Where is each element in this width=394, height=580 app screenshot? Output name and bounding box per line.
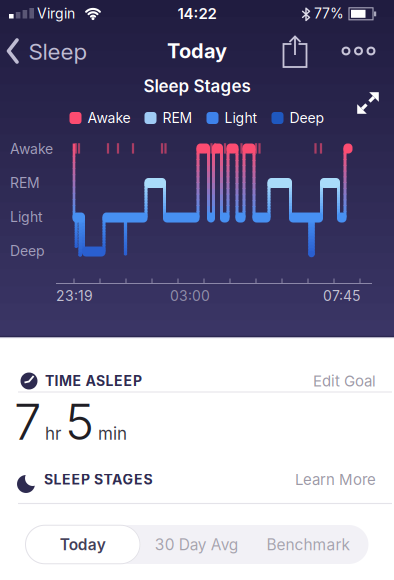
staticText: Sleep Stages bbox=[143, 76, 250, 96]
staticText: Today bbox=[167, 39, 227, 63]
staticText: Deep bbox=[10, 242, 45, 259]
button[interactable]: Benchmark bbox=[251, 525, 366, 564]
staticText: Edit Goal bbox=[313, 372, 376, 390]
staticText: Learn More bbox=[295, 470, 376, 488]
staticText: Sleep bbox=[28, 38, 87, 65]
button[interactable]: More bbox=[336, 31, 381, 71]
staticText: 5 bbox=[65, 392, 94, 452]
staticText: 30 Day Avg bbox=[155, 535, 239, 554]
staticText: Light bbox=[224, 109, 257, 126]
staticText: 07:45 bbox=[323, 287, 361, 304]
staticText: Deep bbox=[289, 109, 324, 126]
staticText: 7 bbox=[14, 392, 41, 452]
staticText: REM bbox=[10, 174, 40, 191]
staticText: 14:22 bbox=[177, 4, 216, 22]
button[interactable]: Expand bbox=[350, 85, 386, 121]
staticText: Today bbox=[60, 535, 106, 554]
staticText: min bbox=[98, 423, 127, 444]
staticText: Light bbox=[10, 208, 43, 225]
button[interactable]: Sleep bbox=[2, 31, 94, 71]
staticText: Virgin bbox=[37, 5, 75, 22]
button[interactable]: Today bbox=[25, 525, 140, 564]
button[interactable]: Share bbox=[275, 31, 315, 73]
staticText: hr bbox=[45, 423, 61, 444]
staticText: 03:00 bbox=[170, 287, 210, 304]
staticText: Benchmark bbox=[266, 535, 350, 554]
button[interactable]: Edit Goal bbox=[286, 361, 376, 401]
staticText: TIME ASLEEP bbox=[45, 372, 142, 389]
staticText: 77% bbox=[314, 5, 344, 22]
staticText: SLEEP STAGES bbox=[44, 471, 152, 488]
button[interactable]: Learn More bbox=[276, 459, 376, 499]
staticText: Awake bbox=[87, 109, 130, 126]
staticText: REM bbox=[162, 109, 192, 126]
button[interactable]: 30 Day Avg bbox=[139, 525, 254, 564]
staticText: Awake bbox=[10, 140, 53, 157]
staticText: 23:19 bbox=[56, 287, 93, 304]
